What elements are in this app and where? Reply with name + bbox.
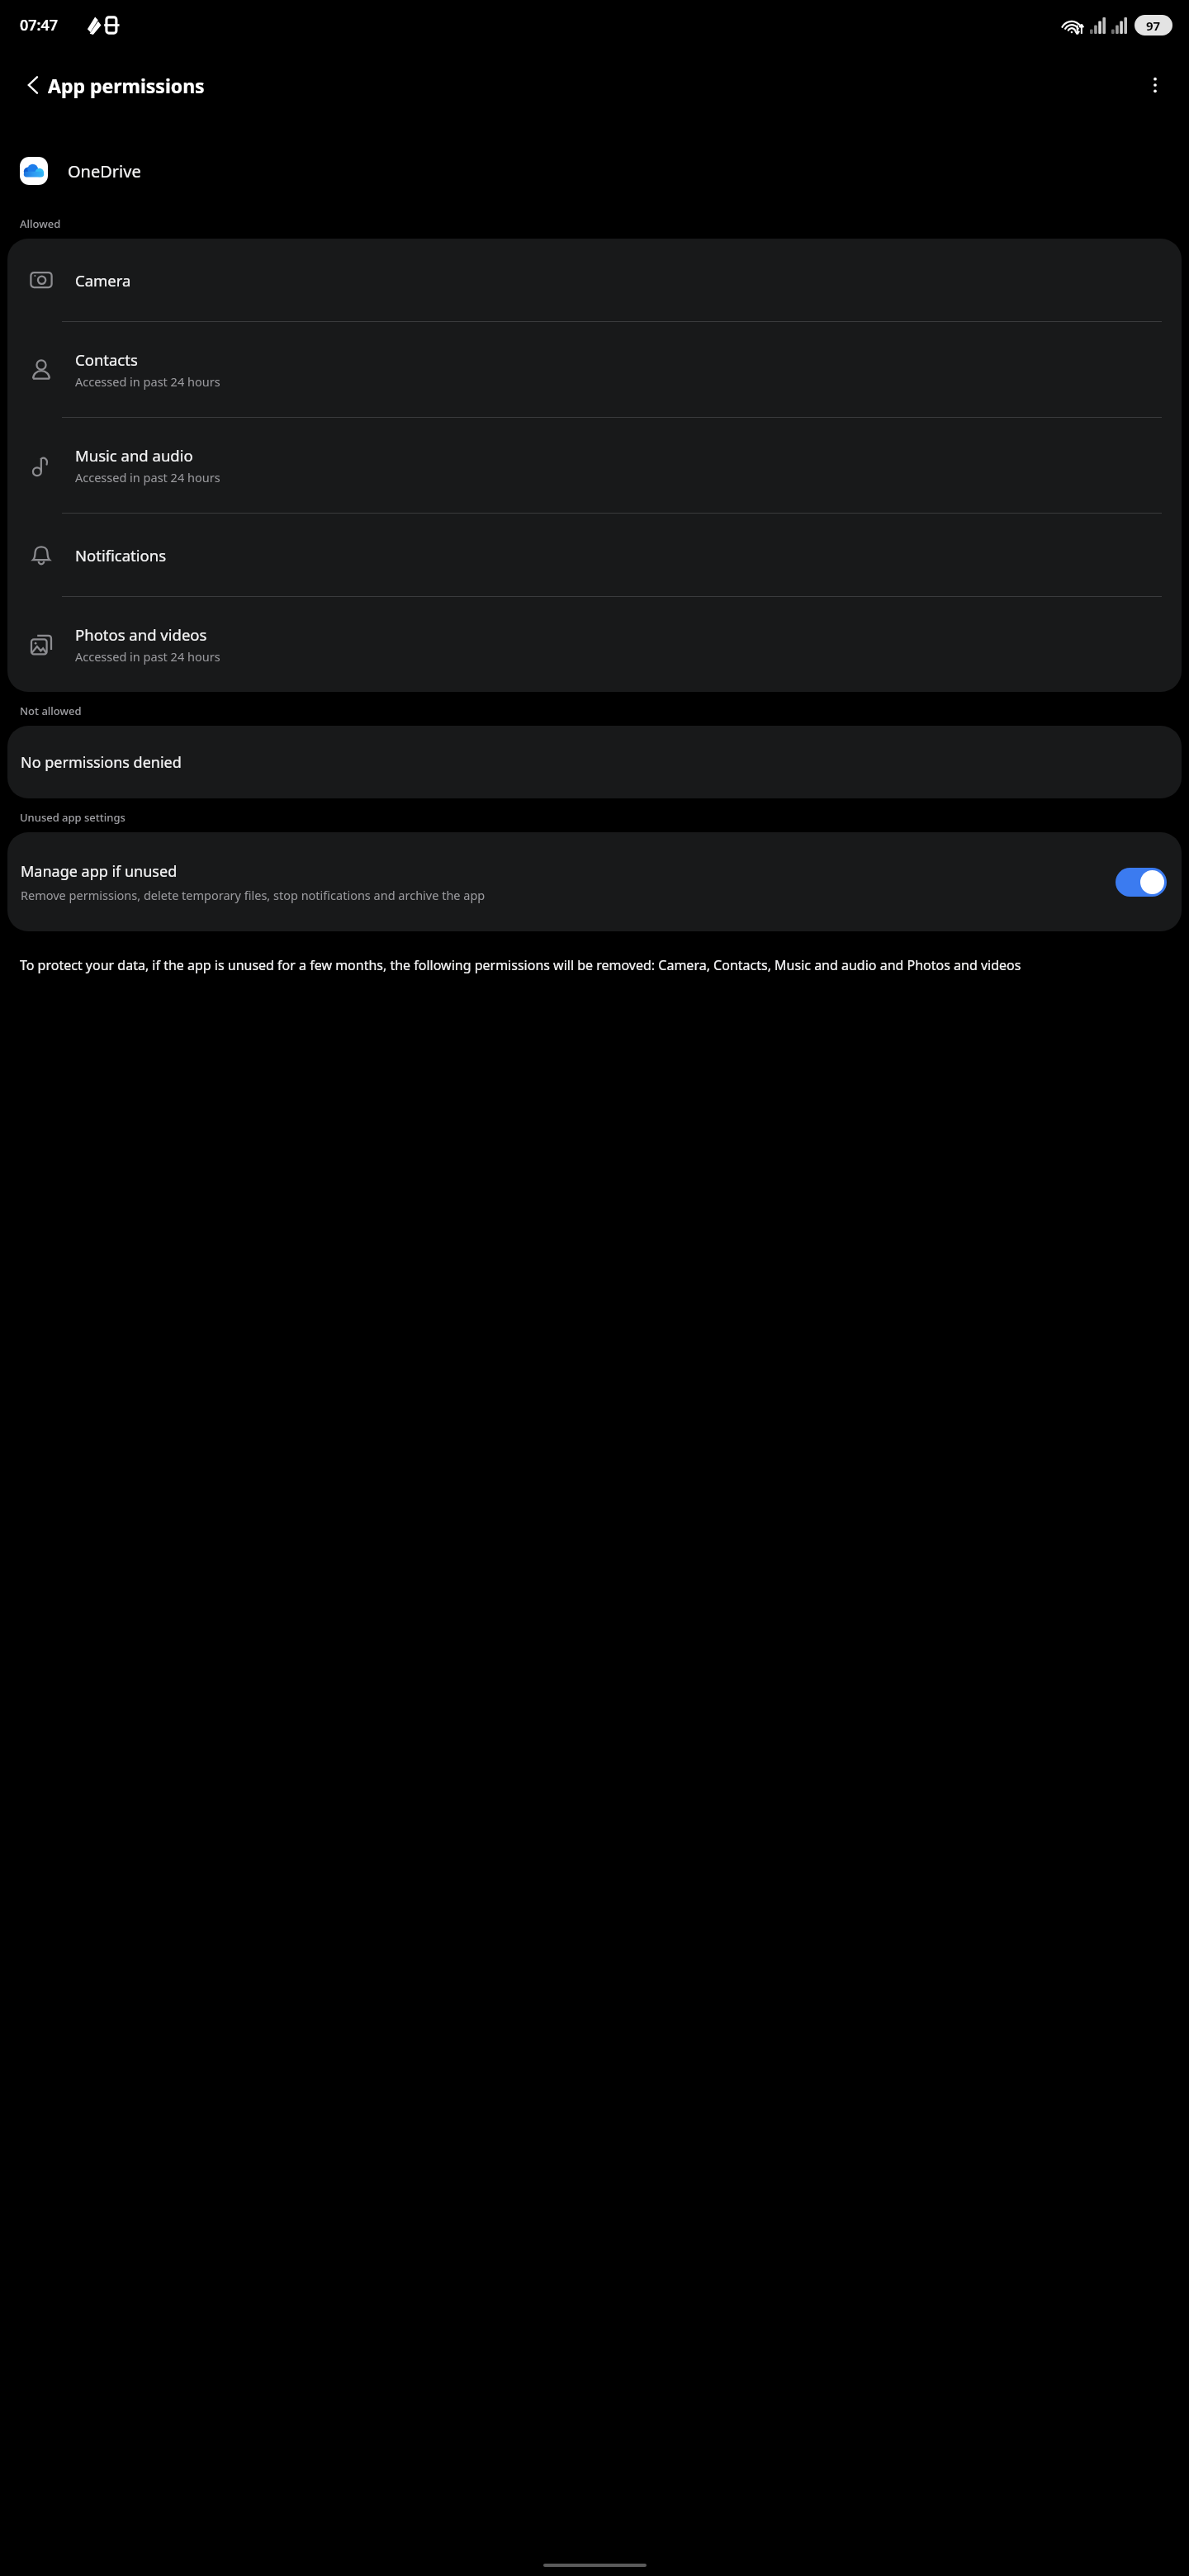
button[interactable]: Photos and videos [7,597,1182,692]
staticText: Music and audio [75,445,193,466]
button[interactable]: Contacts [7,322,1182,418]
staticText: To protect your data, if the app is unus… [20,956,1021,974]
staticText: No permissions denied [21,752,182,773]
staticText: 07:47 [20,15,59,36]
button[interactable]: Notifications [7,514,1182,597]
button[interactable]: More options [1133,63,1177,107]
button[interactable]: OneDrive [0,157,1189,185]
staticText: Camera [75,270,131,291]
staticText: Accessed in past 24 hours [75,648,220,665]
staticText: Manage app if unused [21,861,178,882]
staticText: Unused app settings [20,810,126,825]
staticText: OneDrive [68,160,141,182]
button[interactable]: Camera [7,239,1182,322]
staticText: Remove permissions, delete temporary fil… [21,887,486,903]
button[interactable]: Manage app if unused [7,832,1182,931]
staticText: Not allowed [20,703,82,718]
staticText: 97 [1146,17,1161,34]
staticText: Contacts [75,349,138,370]
button[interactable]: Back [12,63,56,107]
button[interactable]: Music and audio [7,418,1182,514]
staticText: Allowed [20,216,61,231]
staticText: Accessed in past 24 hours [75,469,220,485]
staticText: App permissions [48,73,205,98]
staticText: Accessed in past 24 hours [75,373,220,390]
staticText: Notifications [75,545,167,566]
staticText: Photos and videos [75,624,207,645]
button[interactable]: No permissions denied [7,726,1182,798]
button[interactable]: Manage app if unused toggle [1116,868,1167,897]
